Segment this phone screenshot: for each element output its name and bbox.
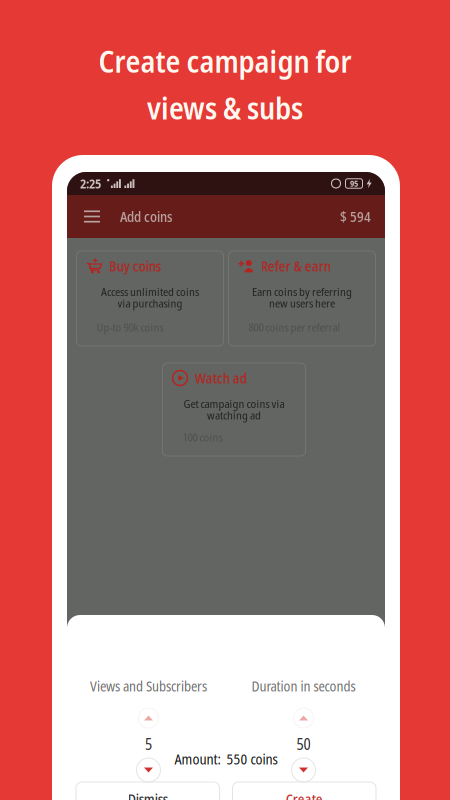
staticText: Earn coins by referring: [252, 284, 352, 299]
staticText: views & subs: [147, 87, 303, 129]
staticText: new users here: [269, 295, 335, 311]
button[interactable]: Dismiss: [76, 782, 219, 800]
staticText: Amount: 550 coins: [174, 749, 277, 769]
staticText: 95: [350, 178, 358, 189]
button[interactable]: Decrease Views and Subscribers: [136, 758, 160, 782]
staticText: Up-to 90k coins: [96, 319, 163, 335]
button[interactable]: Open navigation menu: [77, 197, 107, 235]
staticText: 5: [145, 734, 152, 754]
staticText: Duration in seconds: [251, 677, 355, 695]
staticText: Get campaign coins via: [183, 396, 284, 411]
staticText: watching ad: [207, 407, 261, 423]
button[interactable]: Increase Duration in seconds: [293, 708, 313, 728]
staticText: Views and Subscribers: [90, 677, 207, 695]
button[interactable]: Create: [232, 782, 376, 800]
staticText: via purchasing: [117, 295, 182, 311]
staticText: Dismiss: [128, 789, 168, 800]
staticText: Create: [286, 789, 323, 800]
staticText: 100 coins: [182, 429, 222, 445]
button[interactable]: $ 594: [336, 195, 375, 238]
button[interactable]: Refer & earn: [228, 251, 375, 346]
button[interactable]: Decrease Duration in seconds: [291, 758, 315, 782]
button[interactable]: Increase Views and Subscribers: [138, 708, 158, 728]
staticText: Access unlimited coins: [101, 284, 199, 299]
staticText: 2:25: [80, 175, 101, 192]
button[interactable]: Watch ad: [162, 363, 305, 456]
staticText: Add coins: [120, 207, 172, 226]
staticText: 800 coins per referral: [248, 319, 340, 335]
button[interactable]: Buy coins: [76, 251, 223, 346]
staticText: Refer & earn: [260, 256, 330, 276]
staticText: Buy coins: [108, 256, 161, 276]
staticText: Watch ad: [194, 368, 246, 388]
staticText: Create campaign for: [98, 40, 351, 82]
staticText: 50: [296, 734, 310, 754]
staticText: $ 594: [340, 207, 371, 226]
